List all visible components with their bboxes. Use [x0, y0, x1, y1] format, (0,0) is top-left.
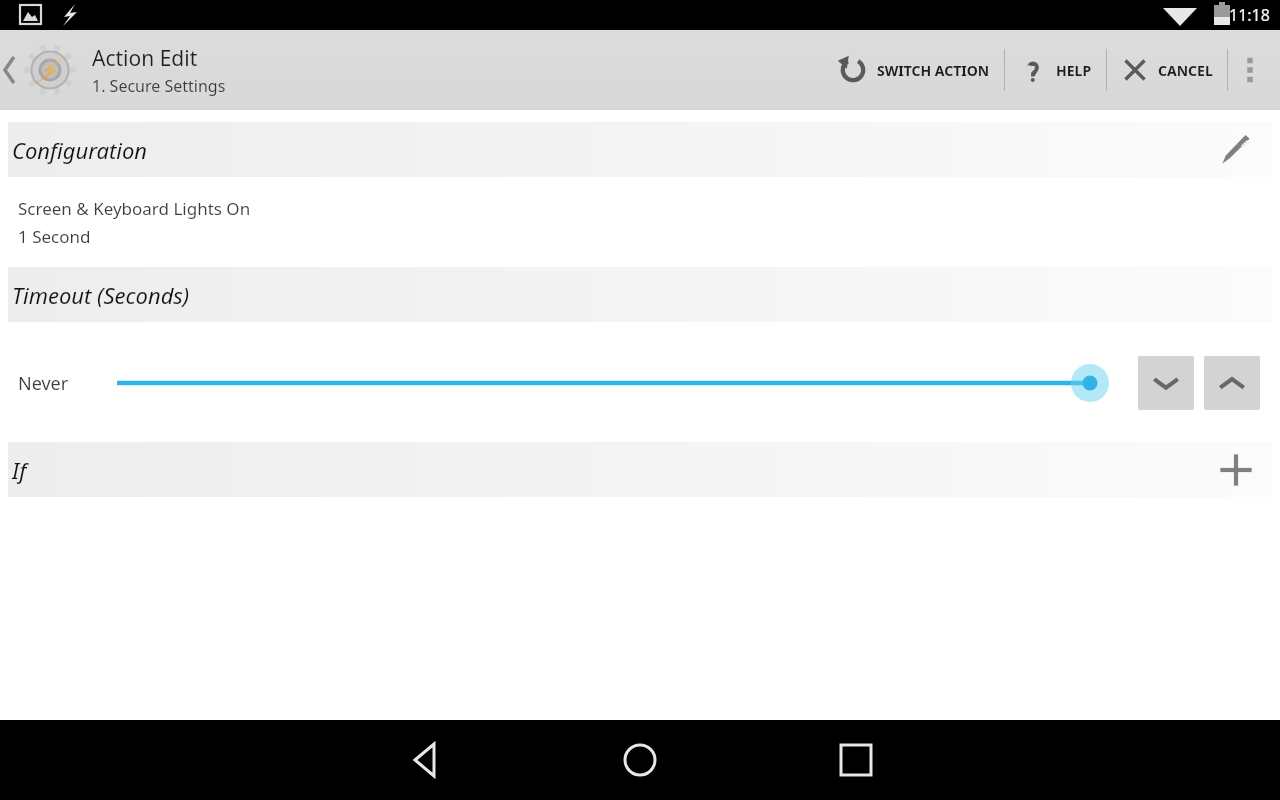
button[interactable]: Back	[0, 36, 230, 104]
button[interactable]: Timeout slider	[69, 350, 1106, 416]
staticText: Screen & Keyboard Lights On	[18, 197, 251, 220]
button[interactable]: Increase	[1204, 356, 1260, 410]
staticText: Timeout (Seconds)	[12, 280, 190, 310]
button[interactable]: Add condition	[1212, 446, 1260, 494]
staticText: Action Edit	[92, 44, 198, 73]
button[interactable]: More options	[1228, 30, 1272, 110]
button[interactable]: Timeout (Seconds)	[8, 267, 1272, 322]
staticText: 11:18	[1229, 4, 1270, 26]
button[interactable]: Edit	[1212, 126, 1260, 174]
button[interactable]: HELP	[1005, 30, 1106, 110]
button[interactable]: Screen & Keyboard Lights On	[0, 195, 1280, 254]
button[interactable]: Configuration	[8, 122, 1272, 177]
staticText: CANCEL	[1158, 61, 1213, 80]
staticText: 1. Secure Settings	[92, 75, 226, 97]
staticText: HELP	[1056, 61, 1092, 80]
staticText: Never	[18, 371, 69, 396]
button[interactable]: CANCEL	[1107, 30, 1227, 110]
button[interactable]: If	[8, 442, 1272, 497]
staticText: 1 Second	[18, 225, 91, 248]
staticText: If	[12, 455, 27, 485]
button[interactable]: Decrease	[1138, 356, 1194, 410]
button[interactable]: SWITCH ACTION	[824, 30, 1004, 110]
staticText: SWITCH ACTION	[877, 61, 990, 80]
staticText: Configuration	[12, 135, 148, 165]
